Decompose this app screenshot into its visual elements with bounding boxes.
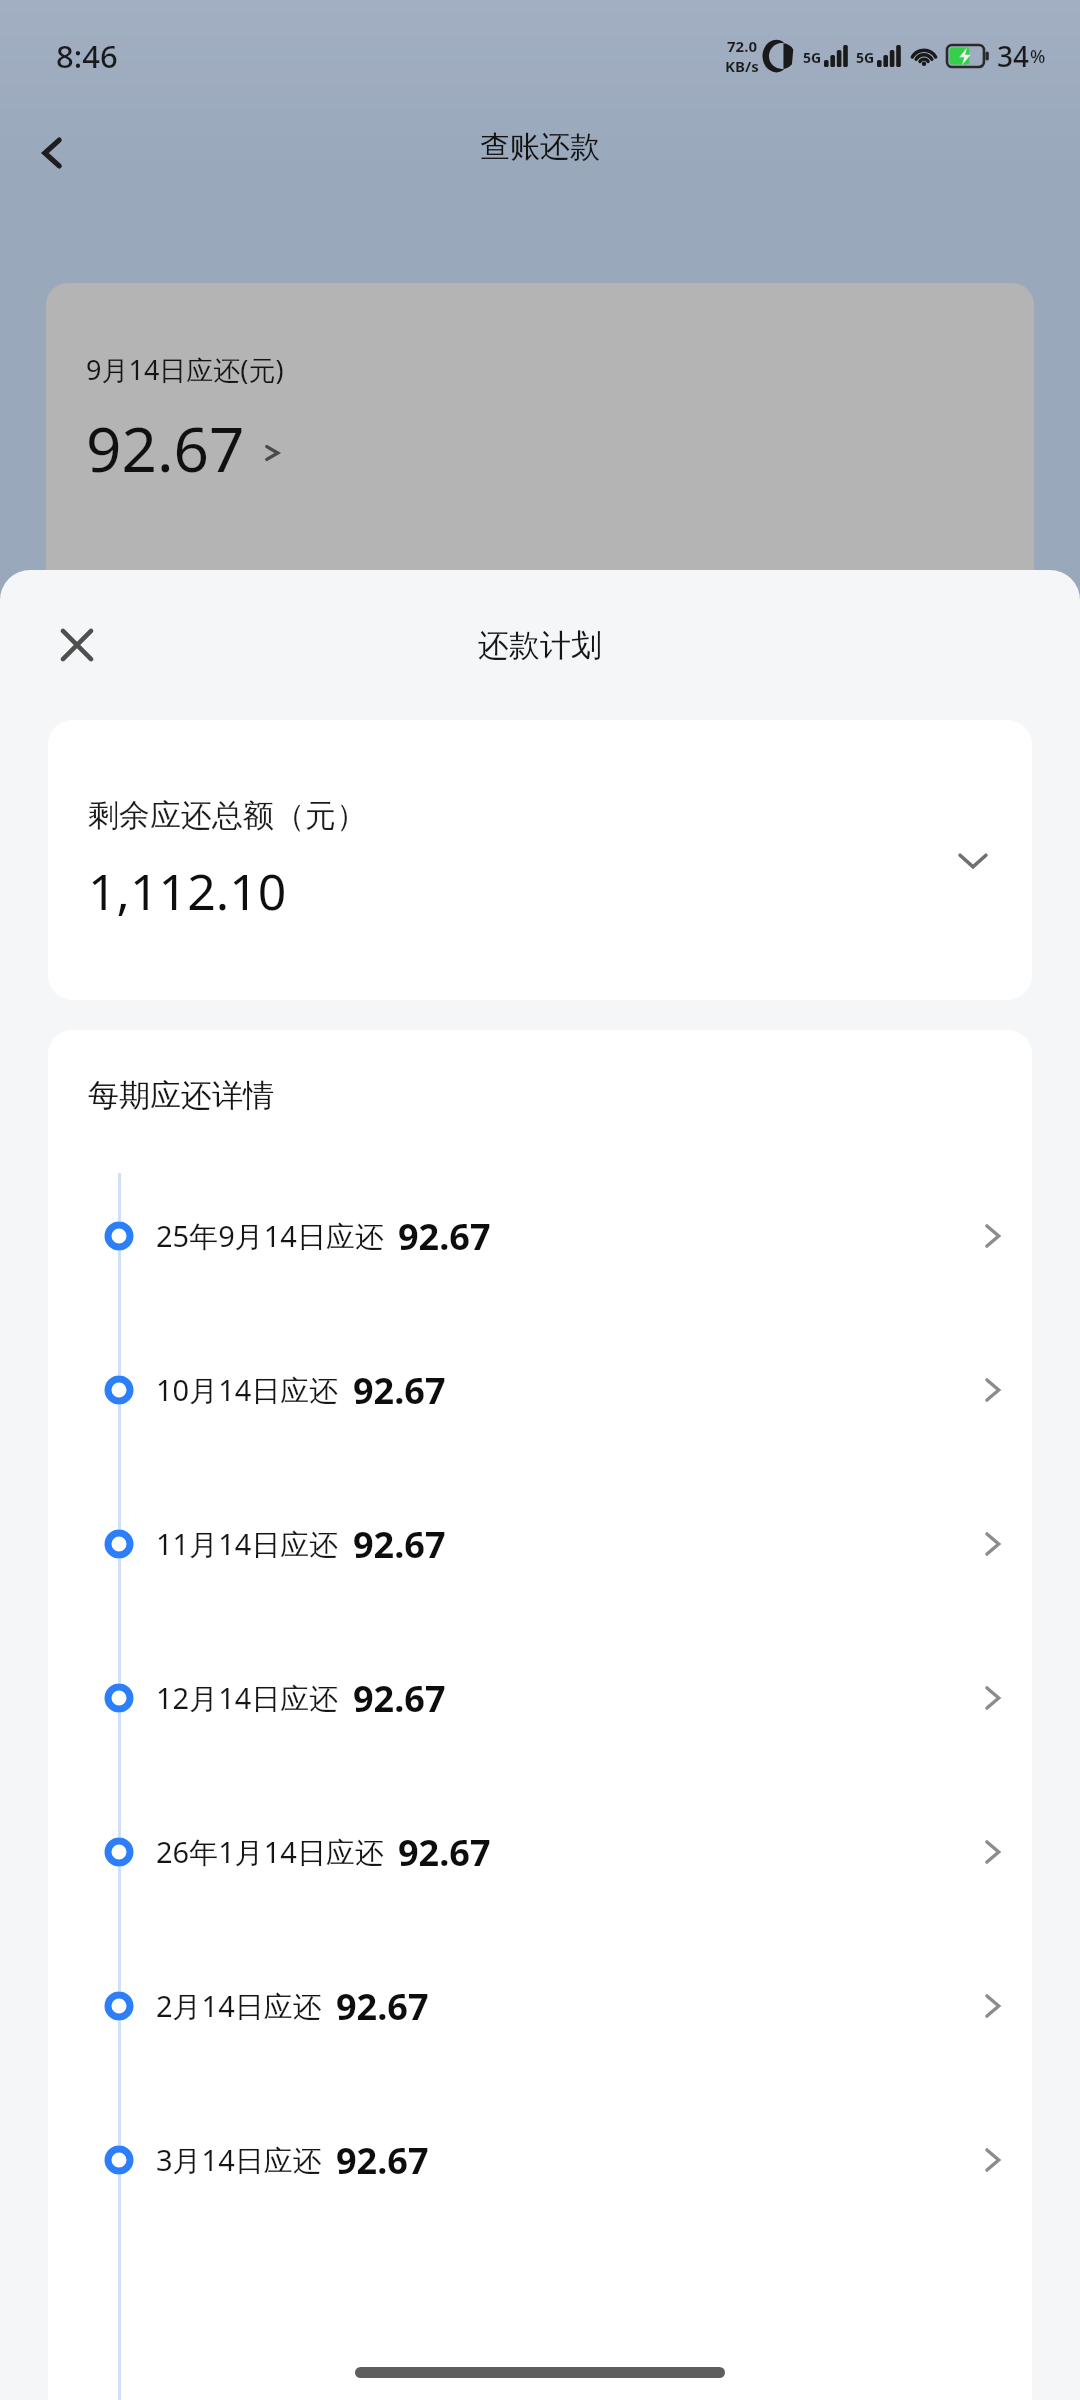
staticText: 92.67: [86, 406, 245, 490]
staticText: 92.67: [398, 1828, 491, 1877]
staticText: 5G: [803, 48, 822, 67]
staticText: 剩余应还总额（元）: [88, 796, 367, 835]
button[interactable]: 剩余应还总额（元）: [48, 720, 1032, 1000]
button[interactable]: Back: [18, 118, 88, 188]
staticText: 12月14日应还: [156, 1678, 339, 1718]
staticText: 92.67: [353, 1674, 446, 1723]
button[interactable]: Close: [38, 606, 116, 684]
staticText: 92.67: [398, 1212, 491, 1261]
button[interactable]: 25年9月14日应还: [48, 1159, 1032, 1313]
staticText: 25年9月14日应还: [156, 1216, 384, 1256]
staticText: 1,112.10: [88, 857, 287, 925]
button[interactable]: 2月14日应还: [48, 1929, 1032, 2083]
staticText: 72.0: [727, 36, 757, 56]
staticText: 92.67: [353, 1366, 446, 1415]
button[interactable]: 12月14日应还: [48, 1621, 1032, 1775]
staticText: 每期应还详情: [88, 1076, 274, 1115]
staticText: 92.67: [336, 2136, 429, 2185]
button[interactable]: 9月14日应还(元): [46, 283, 1034, 603]
staticText: 92.67: [353, 1520, 446, 1569]
button[interactable]: 26年1月14日应还: [48, 1775, 1032, 1929]
button[interactable]: Expand: [942, 829, 1004, 891]
staticText: 9月14日应还(元): [86, 351, 284, 388]
staticText: 查账还款: [480, 128, 600, 166]
staticText: 26年1月14日应还: [156, 1832, 384, 1872]
button[interactable]: 11月14日应还: [48, 1467, 1032, 1621]
staticText: 10月14日应还: [156, 1370, 339, 1410]
staticText: 5G: [856, 48, 875, 67]
staticText: 2月14日应还: [156, 1986, 322, 2026]
staticText: %: [1030, 44, 1046, 69]
staticText: 11月14日应还: [156, 1524, 339, 1564]
staticText: 92.67: [336, 1982, 429, 2031]
button[interactable]: 10月14日应还: [48, 1313, 1032, 1467]
staticText: 3月14日应还: [156, 2140, 322, 2180]
staticText: 34: [997, 37, 1030, 75]
button[interactable]: 3月14日应还: [48, 2083, 1032, 2237]
staticText: 8:46: [56, 35, 118, 77]
staticText: KB/s: [725, 56, 759, 76]
staticText: 还款计划: [478, 626, 602, 665]
